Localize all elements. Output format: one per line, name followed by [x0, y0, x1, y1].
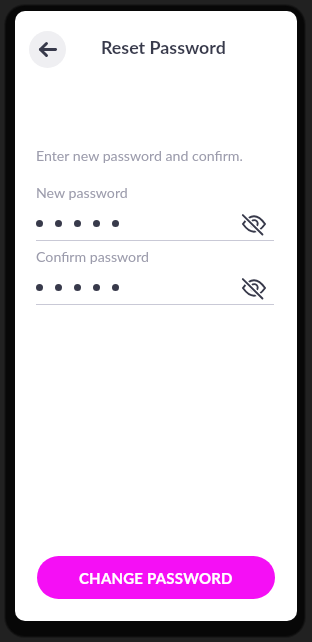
staticText: CHANGE PASSWORD	[79, 569, 233, 587]
staticText: Enter new password and confirm.	[36, 147, 243, 164]
button[interactable]: Back	[29, 31, 66, 68]
staticText: Confirm password	[36, 248, 149, 265]
button[interactable]: Toggle password visibility	[239, 273, 269, 303]
staticText: New password	[36, 184, 128, 201]
button[interactable]: Toggle password visibility	[239, 209, 269, 239]
button[interactable]: CHANGE PASSWORD	[37, 556, 275, 599]
staticText: Reset Password	[101, 36, 226, 57]
